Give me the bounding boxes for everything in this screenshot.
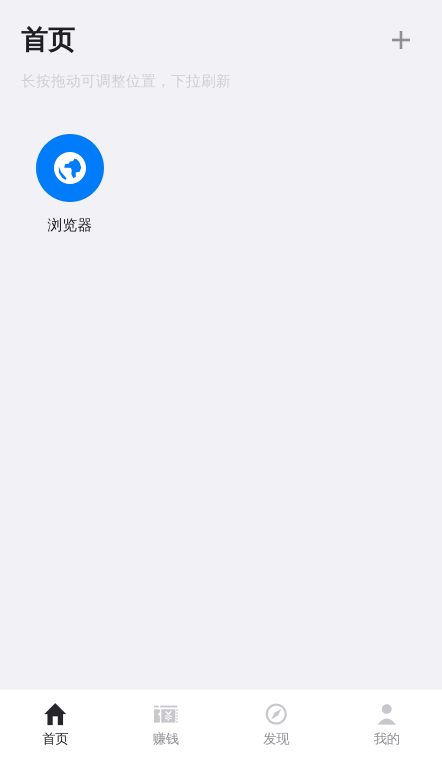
staticText: 赚钱 xyxy=(153,731,179,747)
button[interactable]: 浏览器 xyxy=(22,134,118,234)
button[interactable]: Add xyxy=(380,19,422,61)
staticText: 浏览器 xyxy=(47,216,92,234)
button[interactable]: 我的 xyxy=(331,690,442,758)
button[interactable]: 发现 xyxy=(221,690,331,758)
staticText: 长按拖动可调整位置，下拉刷新 xyxy=(21,72,231,90)
button[interactable]: 首页 xyxy=(0,690,110,758)
staticText: 首页 xyxy=(21,24,75,56)
staticText: 首页 xyxy=(42,731,68,747)
staticText: 发现 xyxy=(263,731,289,747)
button[interactable]: 赚钱 xyxy=(110,690,221,758)
staticText: 我的 xyxy=(374,731,400,747)
